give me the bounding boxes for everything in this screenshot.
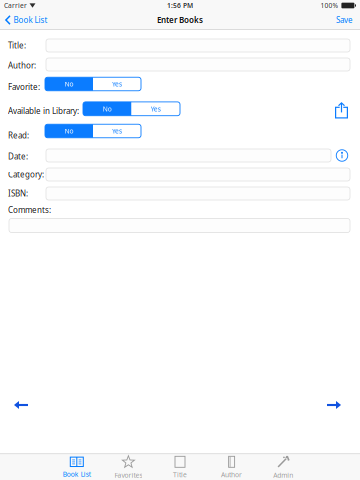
staticText: Favorite: [8, 82, 40, 92]
staticText: Book List [13, 15, 47, 25]
staticText: Title: [8, 40, 26, 51]
staticText: Read: [8, 130, 29, 141]
button[interactable]: No [45, 77, 141, 91]
button[interactable]: Book List [51, 453, 103, 480]
button[interactable]: Next book [327, 399, 341, 410]
staticText: Comments: [8, 205, 51, 215]
button[interactable]: Previous book [14, 399, 28, 410]
button[interactable]: Book List [0, 10, 52, 29]
staticText: Author: [8, 60, 36, 71]
staticText: Admin [273, 471, 293, 480]
button[interactable]: No [83, 102, 180, 116]
staticText: Yes [151, 104, 161, 113]
staticText: No [103, 104, 112, 113]
button[interactable]: Favorites [103, 453, 154, 480]
button[interactable]: Title [154, 453, 206, 480]
button[interactable]: Admin [257, 453, 309, 480]
staticText: No [64, 80, 73, 88]
staticText: Enter Books [157, 15, 203, 25]
staticText: No [64, 127, 73, 135]
staticText: Yes [112, 127, 122, 135]
button[interactable]: Share [335, 102, 348, 118]
staticText: 1:56 PM [167, 1, 193, 10]
staticText: Date: [8, 151, 28, 162]
staticText: Save [336, 15, 353, 25]
staticText: ISBN: [8, 188, 28, 199]
button[interactable]: Save [329, 10, 360, 29]
staticText: Yes [112, 80, 122, 88]
staticText: Category: [8, 169, 44, 180]
staticText: Book List [63, 470, 91, 479]
button[interactable]: Author [206, 453, 257, 480]
button[interactable]: Date information [336, 150, 348, 161]
button[interactable]: No [45, 124, 141, 138]
staticText: Title [173, 470, 187, 479]
staticText: Favorites [114, 471, 142, 480]
staticText: 100% [320, 1, 338, 10]
staticText: Available in Library: [8, 106, 79, 116]
staticText: Author [221, 470, 242, 479]
staticText: Carrier [4, 1, 27, 10]
